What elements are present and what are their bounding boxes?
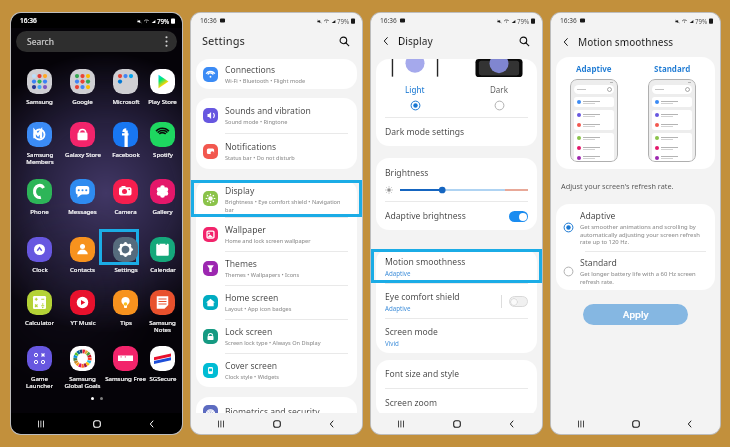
- staticText: Calculator: [25, 318, 54, 326]
- button[interactable]: Gallery: [147, 179, 178, 215]
- button[interactable]: Contacts: [61, 237, 104, 273]
- staticText: YT Music: [70, 318, 96, 326]
- button[interactable]: Recent apps: [571, 414, 591, 434]
- button[interactable]: Spotify: [147, 122, 178, 158]
- button[interactable]: Samsung Global Goals: [61, 346, 104, 390]
- staticText: Themes: [225, 258, 257, 270]
- staticText: Layout • App icon badges: [225, 305, 292, 313]
- staticText: Lock screen: [225, 326, 273, 338]
- staticText: Clock style • Widgets: [225, 373, 280, 381]
- button[interactable]: Screen mode: [376, 319, 537, 353]
- staticText: Samsung Notes: [149, 318, 176, 334]
- button[interactable]: Home: [87, 414, 107, 434]
- button[interactable]: Search: [16, 31, 177, 52]
- button[interactable]: Calculator: [18, 290, 61, 326]
- button[interactable]: Wallpaper: [196, 218, 357, 251]
- staticText: Play Store: [148, 97, 177, 105]
- button[interactable]: Adaptive brightness: [376, 202, 537, 230]
- other: More options: [165, 36, 168, 47]
- button[interactable]: Standard: [556, 252, 715, 290]
- button[interactable]: Game Launcher: [18, 346, 61, 390]
- button[interactable]: Biometrics and security: [196, 397, 357, 427]
- button[interactable]: Lock screen: [196, 320, 357, 353]
- staticText: Adaptive: [385, 304, 411, 312]
- button[interactable]: YT Music: [61, 290, 104, 326]
- staticText: Apply: [623, 308, 649, 321]
- staticText: Gallery: [152, 207, 173, 215]
- staticText: Calendar: [150, 265, 176, 273]
- button[interactable]: Google: [61, 69, 104, 105]
- button[interactable]: Themes: [196, 252, 357, 285]
- button[interactable]: Play Store: [147, 69, 178, 105]
- button[interactable]: Screen zoom: [376, 389, 537, 417]
- button[interactable]: Messages: [61, 179, 104, 215]
- staticText: Status bar • Do not disturb: [225, 154, 295, 162]
- button[interactable]: [509, 296, 528, 307]
- button[interactable]: Navigate up: [558, 34, 573, 49]
- staticText: Display: [398, 34, 433, 48]
- staticText: Samsung: [26, 97, 53, 105]
- button[interactable]: SGSecure: [147, 346, 178, 382]
- button[interactable]: Eye comfort shield: [376, 284, 537, 318]
- staticText: Facebook: [112, 150, 140, 158]
- button[interactable]: Home: [447, 414, 467, 434]
- button[interactable]: Sounds and vibration: [196, 98, 357, 133]
- button[interactable]: Navigate up: [378, 33, 393, 48]
- button[interactable]: [509, 211, 528, 222]
- staticText: Biometrics and security: [225, 406, 320, 418]
- button[interactable]: Connections: [196, 59, 357, 89]
- staticText: 79%: [337, 17, 350, 25]
- staticText: Themes • Wallpapers • Icons: [225, 271, 300, 279]
- button[interactable]: Back: [502, 414, 522, 434]
- button[interactable]: Dark mode settings: [376, 118, 537, 146]
- button[interactable]: Samsung Free: [104, 346, 147, 382]
- button[interactable]: Samsung: [18, 69, 61, 105]
- button[interactable]: Home: [267, 414, 287, 434]
- button[interactable]: Adaptive: [556, 204, 715, 251]
- button[interactable]: Clock: [18, 237, 61, 273]
- button[interactable]: Apply: [583, 304, 688, 325]
- button[interactable]: Motion smoothness: [376, 249, 537, 283]
- button[interactable]: Recent apps: [31, 414, 51, 434]
- button[interactable]: Search: [515, 32, 533, 50]
- button[interactable]: Settings: [104, 237, 147, 273]
- button[interactable]: Notifications: [196, 134, 357, 169]
- button[interactable]: Brightness: [376, 158, 537, 201]
- staticText: Samsung Global Goals: [64, 374, 101, 390]
- button[interactable]: Recent apps: [211, 414, 231, 434]
- button[interactable]: Home: [626, 414, 646, 434]
- button[interactable]: Samsung Members: [18, 122, 61, 166]
- button[interactable]: Back: [680, 414, 700, 434]
- button[interactable]: Facebook: [104, 122, 147, 158]
- staticText: Google: [72, 97, 93, 105]
- staticText: Brightness: [385, 167, 429, 179]
- staticText: Get longer battery life with a 60 Hz scr…: [580, 270, 706, 285]
- button[interactable]: Phone: [18, 179, 61, 215]
- button[interactable]: Back: [322, 414, 342, 434]
- button[interactable]: Font size and style: [376, 360, 537, 388]
- staticText: Adaptive brightness: [385, 210, 466, 222]
- button[interactable]: Calendar: [147, 237, 178, 273]
- button[interactable]: Display: [196, 180, 357, 217]
- button[interactable]: Cover screen: [196, 354, 357, 387]
- staticText: Adjust your screen's refresh rate.: [561, 181, 674, 191]
- staticText: Display: [225, 185, 255, 197]
- staticText: Contacts: [70, 265, 95, 273]
- staticText: Wallpaper: [225, 224, 266, 236]
- staticText: Tips: [120, 318, 132, 326]
- staticText: 16:36: [560, 16, 577, 25]
- button[interactable]: Galaxy Store: [61, 122, 104, 158]
- button[interactable]: Tips: [104, 290, 147, 326]
- staticText: Screen mode: [385, 326, 438, 338]
- staticText: Dark mode settings: [385, 126, 465, 138]
- button[interactable]: Microsoft: [104, 69, 147, 105]
- button[interactable]: Camera: [104, 179, 147, 215]
- staticText: Wi-Fi • Bluetooth • Flight mode: [225, 77, 306, 85]
- staticText: Microsoft: [112, 97, 140, 105]
- staticText: Adaptive: [580, 210, 616, 222]
- button[interactable]: Back: [142, 414, 162, 434]
- button[interactable]: Recent apps: [391, 414, 411, 434]
- button[interactable]: Home screen: [196, 286, 357, 319]
- button[interactable]: Samsung Notes: [147, 290, 178, 334]
- button[interactable]: Search: [335, 32, 353, 50]
